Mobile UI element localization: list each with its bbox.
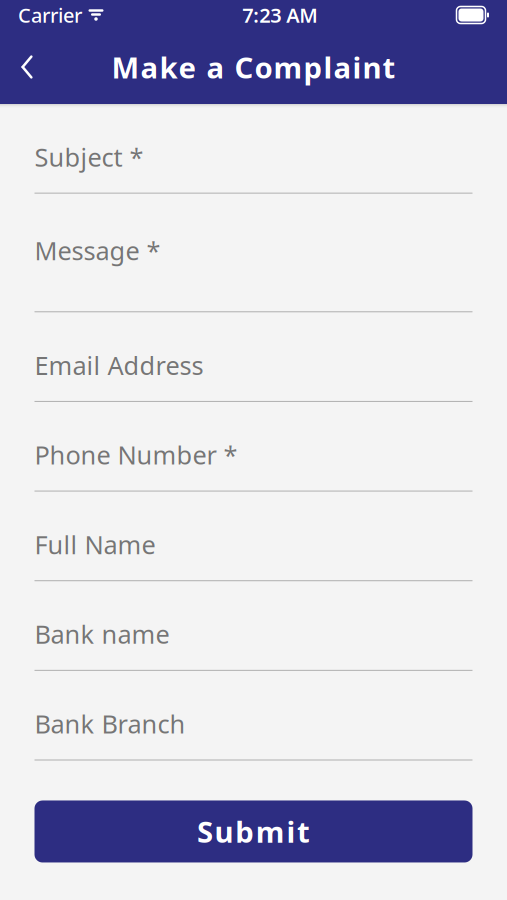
button[interactable]: Email Address bbox=[0, 348, 507, 402]
staticText: Subject * bbox=[34, 140, 143, 174]
button[interactable]: Submit bbox=[34, 800, 472, 862]
button[interactable]: Bank name bbox=[0, 617, 507, 671]
staticText: Submit bbox=[197, 812, 310, 851]
button[interactable]: Subject * bbox=[0, 140, 507, 194]
button[interactable]: Full Name bbox=[0, 528, 507, 581]
button[interactable]: Bank Branch bbox=[0, 707, 507, 760]
staticText: Full Name bbox=[34, 528, 155, 561]
staticText: Bank name bbox=[34, 617, 169, 651]
staticText: Email Address bbox=[34, 348, 203, 382]
staticText: Phone Number * bbox=[34, 438, 237, 471]
staticText: Carrier bbox=[18, 2, 82, 28]
staticText: Bank Branch bbox=[34, 707, 185, 740]
staticText: Message * bbox=[34, 234, 160, 267]
button[interactable]: Phone Number * bbox=[0, 438, 507, 491]
staticText: Make a Complaint bbox=[111, 47, 395, 86]
button[interactable]: Back bbox=[0, 40, 54, 94]
staticText: 7:23 AM bbox=[242, 2, 318, 28]
button[interactable]: Message * bbox=[0, 234, 507, 312]
